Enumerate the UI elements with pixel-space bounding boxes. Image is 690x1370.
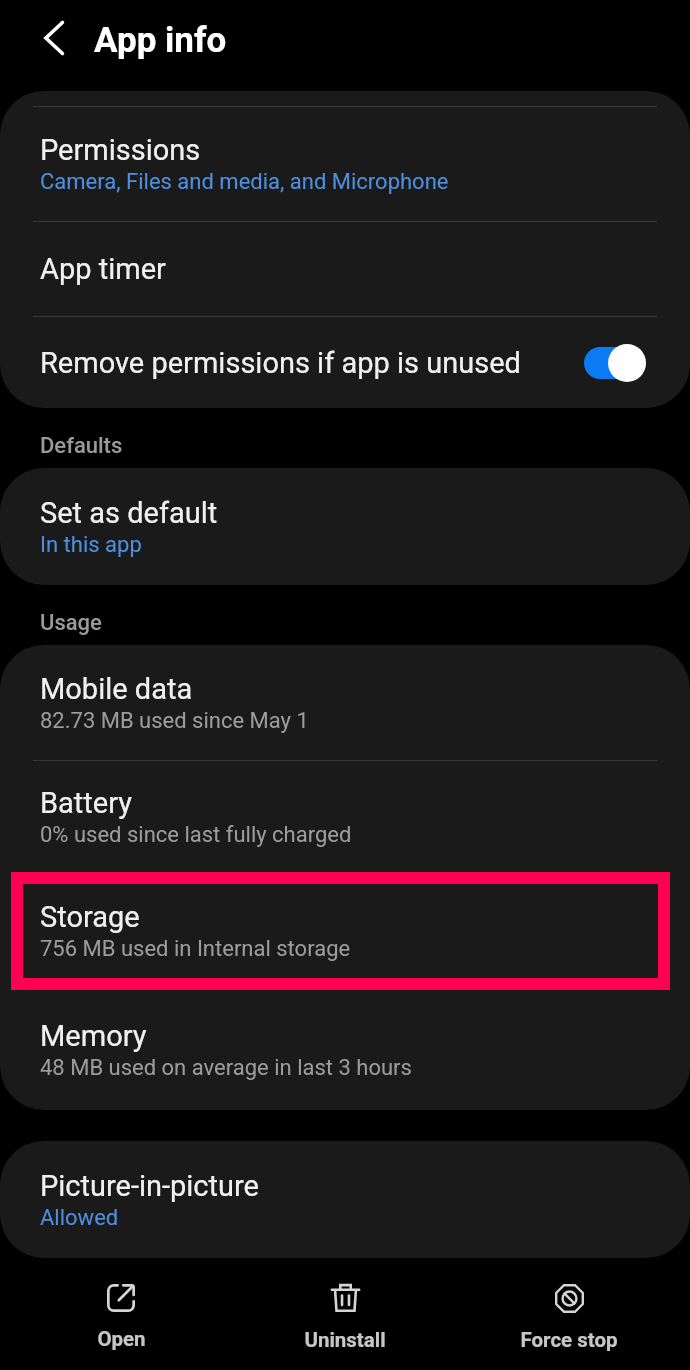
staticText: Mobile data xyxy=(40,672,193,706)
button[interactable]: Uninstall xyxy=(233,1282,457,1366)
staticText: Picture-in-picture xyxy=(40,1169,259,1203)
staticText: Set as default xyxy=(40,496,218,530)
staticText: Uninstall xyxy=(304,1328,386,1352)
button[interactable]: Open xyxy=(9,1282,233,1366)
staticText: Usage xyxy=(40,610,102,636)
button[interactable]: Remove permissions if app is unused xyxy=(0,317,690,408)
staticText: Permissions xyxy=(40,133,201,167)
staticText: Open xyxy=(97,1327,146,1351)
staticText: App info xyxy=(94,20,227,61)
button[interactable]: Back xyxy=(21,5,87,71)
button[interactable]: Battery xyxy=(0,761,690,873)
button[interactable]: Force stop xyxy=(457,1282,681,1366)
button[interactable]: Remove permissions if app is unused togg… xyxy=(584,344,646,382)
button[interactable]: Storage xyxy=(0,873,690,989)
staticText: Defaults xyxy=(40,433,123,459)
staticText: 756 MB used in Internal storage xyxy=(40,936,351,962)
staticText: Battery xyxy=(40,786,132,820)
staticText: Storage xyxy=(40,900,140,934)
staticText: 48 MB used on average in last 3 hours xyxy=(40,1055,412,1081)
button[interactable]: Mobile data xyxy=(0,645,690,760)
button[interactable]: Storage highlighted xyxy=(11,872,670,990)
staticText: Memory xyxy=(40,1019,147,1053)
staticText: Allowed xyxy=(40,1205,119,1231)
staticText: Remove permissions if app is unused xyxy=(40,346,521,380)
button[interactable]: App timer xyxy=(0,222,690,316)
button[interactable]: Set as default xyxy=(0,468,690,585)
button[interactable]: Memory xyxy=(0,990,690,1110)
staticText: Camera, Files and media, and Microphone xyxy=(40,169,449,195)
staticText: 82.73 MB used since May 1 xyxy=(40,708,309,734)
staticText: App timer xyxy=(40,252,166,286)
staticText: Force stop xyxy=(520,1328,618,1352)
staticText: 0% used since last fully charged xyxy=(40,822,352,848)
staticText: In this app xyxy=(40,532,142,558)
button[interactable]: Permissions xyxy=(0,107,690,221)
button[interactable]: Picture-in-picture xyxy=(0,1141,690,1258)
